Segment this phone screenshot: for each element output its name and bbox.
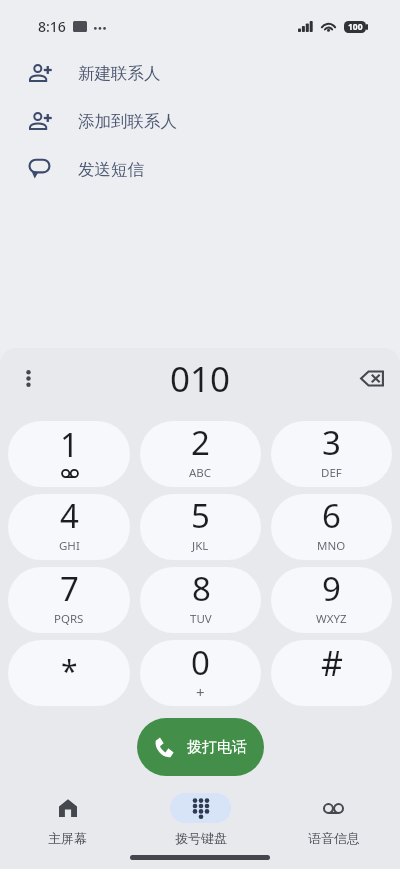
staticText: 新建联系人 xyxy=(78,63,161,84)
staticText: 主屏幕 xyxy=(48,830,87,846)
staticText: 9 xyxy=(322,567,341,611)
staticText: 添加到联系人 xyxy=(78,111,177,132)
staticText: 0 xyxy=(191,640,210,685)
button[interactable]: 发送短信 xyxy=(0,144,400,192)
button[interactable]: 5 xyxy=(140,494,261,560)
button[interactable]: 1 xyxy=(8,421,130,487)
button[interactable]: 7 xyxy=(8,567,130,633)
button[interactable]: 拨打电话 xyxy=(137,718,264,776)
staticText: WXYZ xyxy=(316,611,347,627)
staticText: 拨打电话 xyxy=(187,738,247,757)
staticText: 6 xyxy=(322,494,341,538)
staticText: GHI xyxy=(59,538,80,554)
button[interactable]: 4 xyxy=(8,494,130,560)
staticText: 3 xyxy=(322,421,341,465)
staticText: 拨号键盘 xyxy=(175,830,227,846)
staticText: + xyxy=(196,682,205,702)
button[interactable]: 添加到联系人 xyxy=(0,96,400,144)
staticText: 5 xyxy=(191,494,210,538)
staticText: 发送短信 xyxy=(78,159,144,180)
staticText: JKL xyxy=(192,538,209,554)
staticText: 2 xyxy=(191,421,210,465)
staticText: DEF xyxy=(321,465,342,481)
staticText: TUV xyxy=(190,611,212,627)
staticText: MNO xyxy=(317,538,346,554)
button[interactable]: * xyxy=(8,640,130,706)
staticText: 4 xyxy=(60,494,79,538)
staticText: 1 xyxy=(60,422,79,467)
button[interactable]: 2 xyxy=(140,421,261,487)
staticText: 100 xyxy=(348,21,363,33)
button[interactable]: Backspace xyxy=(350,356,394,400)
staticText: # xyxy=(321,640,343,686)
staticText: 8 xyxy=(192,567,211,611)
button[interactable]: 新建联系人 xyxy=(0,48,400,96)
button[interactable]: 0 xyxy=(140,640,261,706)
staticText: 语音信息 xyxy=(308,830,360,846)
staticText: 7 xyxy=(60,567,79,611)
staticText: 010 xyxy=(170,355,231,403)
staticText: ABC xyxy=(189,465,212,481)
button[interactable]: More options xyxy=(8,358,48,398)
button[interactable]: 8 xyxy=(140,567,261,633)
button[interactable]: 主屏幕 xyxy=(0,786,134,846)
button[interactable]: 6 xyxy=(271,494,392,560)
button[interactable]: 9 xyxy=(271,567,392,633)
staticText: 8:16 xyxy=(38,17,66,36)
button[interactable]: 语音信息 xyxy=(267,786,400,846)
button[interactable]: # xyxy=(271,640,392,706)
staticText: * xyxy=(61,650,78,691)
button[interactable]: 3 xyxy=(271,421,392,487)
button[interactable]: 拨号键盘 xyxy=(134,786,267,846)
staticText: PQRS xyxy=(54,611,84,627)
